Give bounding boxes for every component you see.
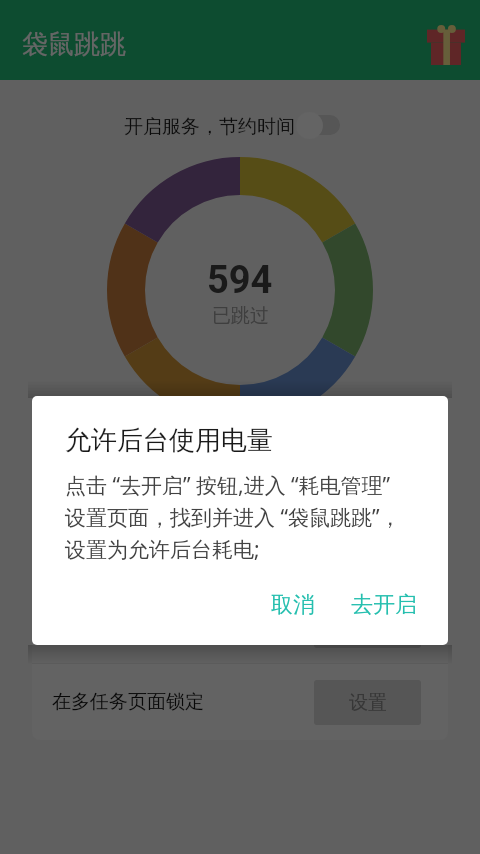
button[interactable]: 自启动管理 — [32, 587, 448, 663]
staticText: 设置 — [349, 614, 387, 638]
staticText: 袋鼠跳跳 — [22, 28, 126, 61]
staticText: 点击 “去开启” 按钮,进入 “耗电管理” 设置页面，找到并进入 “袋鼠跳跳”，… — [65, 471, 401, 564]
staticText: 594 — [207, 258, 273, 303]
button[interactable]: 设置 — [314, 680, 421, 725]
staticText: 去开启 — [351, 591, 417, 619]
staticText: 开启服务，节约时间 — [124, 115, 295, 139]
staticText: 设置 — [349, 691, 387, 715]
button[interactable]: Enable service — [296, 111, 340, 139]
button[interactable]: 在多任务页面锁定 — [32, 664, 448, 740]
button[interactable]: 设置 — [314, 603, 421, 648]
staticText: 取消 — [271, 591, 315, 619]
button[interactable]: Gift — [427, 25, 465, 65]
staticText: 已跳过 — [212, 304, 269, 328]
button[interactable]: 去开启 — [339, 583, 429, 627]
button[interactable]: 取消 — [259, 583, 327, 627]
staticText: 在多任务页面锁定 — [52, 690, 204, 714]
staticText: 允许后台使用电量 — [65, 424, 273, 457]
